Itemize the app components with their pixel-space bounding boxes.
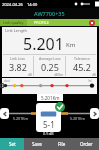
staticText: PROFILE — [34, 20, 49, 25]
staticText: Link quality — [3, 20, 24, 25]
button[interactable]: Set — [0, 138, 24, 150]
staticText: File — [58, 141, 66, 147]
button[interactable]: Save — [24, 138, 49, 150]
staticText: 5.201Km — [70, 116, 85, 121]
button[interactable]: PROFILE — [27, 19, 55, 26]
staticText: 5.201Km — [13, 116, 28, 121]
other: Link OK — [55, 102, 65, 112]
button[interactable]: Link Loss — [2, 55, 33, 77]
staticText: Tolerance — [74, 56, 90, 61]
staticText: 3.82 — [9, 61, 27, 73]
staticText: dB/km — [54, 73, 64, 77]
staticText: Order — [80, 141, 93, 147]
button[interactable]: Average Loss — [34, 55, 65, 77]
staticText: 45.2 — [73, 61, 91, 73]
button[interactable]: Previous link — [0, 108, 9, 119]
button[interactable]: Order — [74, 138, 99, 150]
button[interactable]: File — [49, 138, 74, 150]
button[interactable]: Link quality — [0, 19, 27, 26]
staticText: 0.25 — [41, 61, 59, 73]
staticText: dB — [92, 73, 96, 77]
staticText: AW7700+35 — [34, 10, 65, 17]
staticText: Link Loss — [10, 56, 25, 61]
staticText: Save — [32, 141, 42, 147]
staticText: abcd — [4, 79, 10, 83]
button[interactable]: Tolerance — [66, 55, 97, 77]
staticText: 5.201Km — [41, 95, 60, 101]
staticText: dB — [28, 73, 32, 77]
staticText: 5-1 — [43, 119, 55, 130]
staticText: 0.5dB — [43, 131, 54, 136]
staticText: Average Loss — [39, 56, 61, 61]
button[interactable]: Close — [89, 20, 95, 26]
staticText: Link Length — [5, 28, 27, 33]
staticText: Km — [66, 41, 76, 49]
button[interactable]: 5-1 — [36, 103, 61, 132]
staticText: 5.201 — [23, 33, 64, 51]
staticText: 14:00 — [27, 2, 38, 7]
staticText: 2024-04-26 — [2, 2, 23, 7]
staticText: (m) — [88, 79, 92, 83]
button[interactable]: Next link — [90, 108, 99, 119]
staticText: Set — [9, 141, 16, 147]
